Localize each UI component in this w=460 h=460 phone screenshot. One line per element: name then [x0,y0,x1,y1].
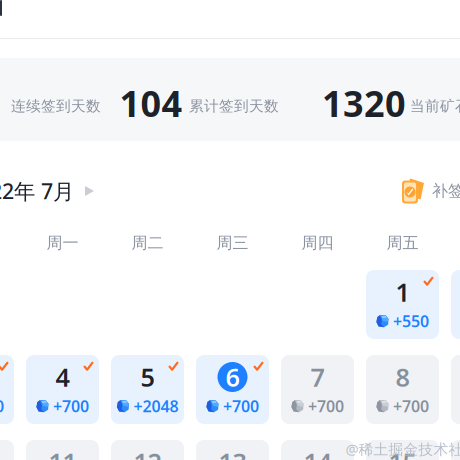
button[interactable]: Back [0,0,16,16]
button[interactable]: 10 [0,440,14,460]
staticText: 13 [218,445,246,460]
staticText: 周二 [131,233,163,253]
staticText: 周五 [386,233,418,253]
staticText: 周一 [46,233,78,253]
staticText: +700 [223,395,259,417]
staticText: 11 [48,445,76,460]
button[interactable]: 6 [196,355,269,424]
staticText: 14 [303,445,331,460]
staticText: 4 [55,360,69,394]
button[interactable]: 15 [366,440,439,460]
button[interactable]: 1 [366,270,439,339]
staticText: 补签 [432,181,460,201]
staticText: +700 [53,395,89,417]
staticText: 12 [133,445,161,460]
staticText: 7 [310,360,324,394]
staticText: 104 [119,79,182,127]
staticText: @稀土掘金技术社区 [345,439,460,459]
staticText: 周四 [301,233,333,253]
button[interactable]: 2 [451,270,460,339]
button[interactable]: 13 [196,440,269,460]
button[interactable]: 16 [451,440,460,460]
staticText: 6 [225,360,239,394]
staticText: +2048 [133,395,178,417]
staticText: +700 [0,395,4,417]
staticText: 1320 [322,79,406,127]
button[interactable]: 4 [26,355,99,424]
staticText: 8 [395,360,409,394]
staticText: 当前矿石 [410,97,460,115]
button[interactable]: 8 [366,355,439,424]
button[interactable]: 12 [111,440,184,460]
staticText: 5 [140,360,154,394]
button[interactable]: 补签 [402,176,460,206]
staticText: +550 [393,310,429,332]
staticText: 连续签到天数 [11,97,101,115]
staticText: 累计签到天数 [189,97,279,115]
button[interactable]: 14 [281,440,354,460]
button[interactable]: 11 [26,440,99,460]
button[interactable]: 5 [111,355,184,424]
staticText: 1 [395,275,409,309]
button[interactable]: 22年 7月 [0,176,94,206]
button[interactable]: 3 [0,355,14,424]
staticText: 周三 [216,233,248,253]
staticText: +700 [308,395,344,417]
staticText: 15 [388,445,416,460]
staticText: +700 [393,395,429,417]
staticText: 22年 7月 [0,177,74,205]
button[interactable]: 7 [281,355,354,424]
